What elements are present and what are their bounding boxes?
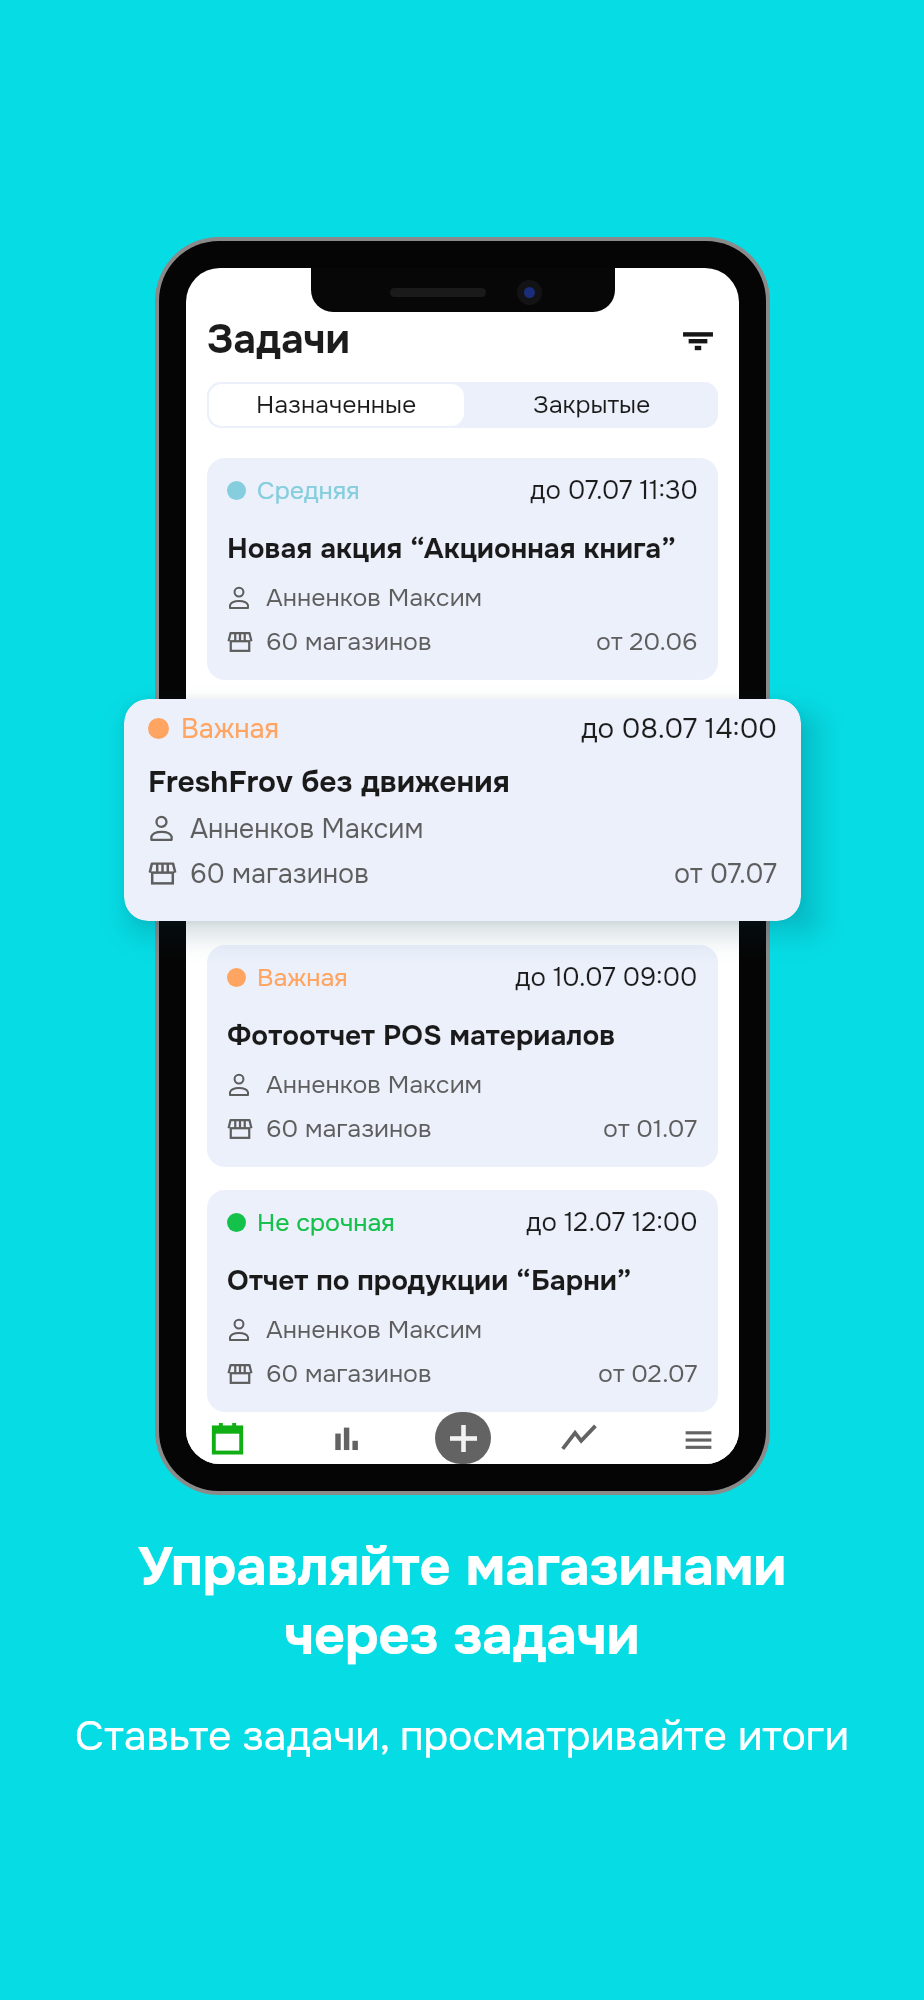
staticText: Важная <box>257 962 348 994</box>
staticText: Важная <box>181 712 279 746</box>
staticText: до 12.07 12:00 <box>526 1206 698 1239</box>
button[interactable]: Не срочная <box>207 1190 718 1412</box>
button[interactable]: Средняя <box>207 458 718 680</box>
staticText: от 01.07 <box>603 1113 698 1145</box>
staticText: Не срочная <box>257 1207 395 1239</box>
staticText: Управляйте магазинами через задачи <box>0 1533 924 1670</box>
button[interactable]: Menu <box>667 1412 729 1464</box>
button[interactable]: Важная <box>124 699 801 921</box>
staticText: 60 магазинов <box>266 1113 432 1145</box>
staticText: от 02.07 <box>598 1358 698 1390</box>
staticText: Фотоотчет POS материалов <box>227 1018 616 1054</box>
staticText: Анненков Максим <box>266 582 483 614</box>
staticText: Новая акция “Акционная книга” <box>227 531 676 567</box>
button[interactable]: Важная <box>207 945 718 1167</box>
staticText: Анненков Максим <box>190 812 424 846</box>
staticText: до 07.07 11:30 <box>530 474 698 507</box>
staticText: от 20.06 <box>596 626 698 658</box>
button[interactable]: Filter <box>675 316 721 362</box>
staticText: от 07.07 <box>674 857 777 891</box>
staticText: Отчет по продукции “Барни” <box>227 1263 632 1299</box>
staticText: Назначенные <box>256 389 417 421</box>
button[interactable]: Назначенные <box>209 384 464 426</box>
staticText: 60 магазинов <box>190 857 369 891</box>
staticText: Анненков Максим <box>266 1069 483 1101</box>
staticText: Закрытые <box>533 389 651 421</box>
staticText: Ставьте задачи, просматривайте итоги <box>0 1710 924 1762</box>
staticText: до 08.07 14:00 <box>581 711 777 747</box>
button[interactable]: Calendar <box>196 1412 258 1464</box>
staticText: 60 магазинов <box>266 1358 432 1390</box>
staticText: Средняя <box>257 475 360 507</box>
staticText: 60 магазинов <box>266 626 432 658</box>
staticText: FreshFrov без движения <box>148 763 510 801</box>
staticText: Задачи <box>207 314 350 365</box>
button[interactable]: Analytics <box>548 1412 610 1464</box>
button[interactable]: Закрытые <box>466 382 718 428</box>
staticText: до 10.07 09:00 <box>515 961 698 994</box>
button[interactable]: Add task <box>435 1412 491 1464</box>
staticText: Анненков Максим <box>266 1314 483 1346</box>
button[interactable]: Statistics <box>315 1412 377 1464</box>
